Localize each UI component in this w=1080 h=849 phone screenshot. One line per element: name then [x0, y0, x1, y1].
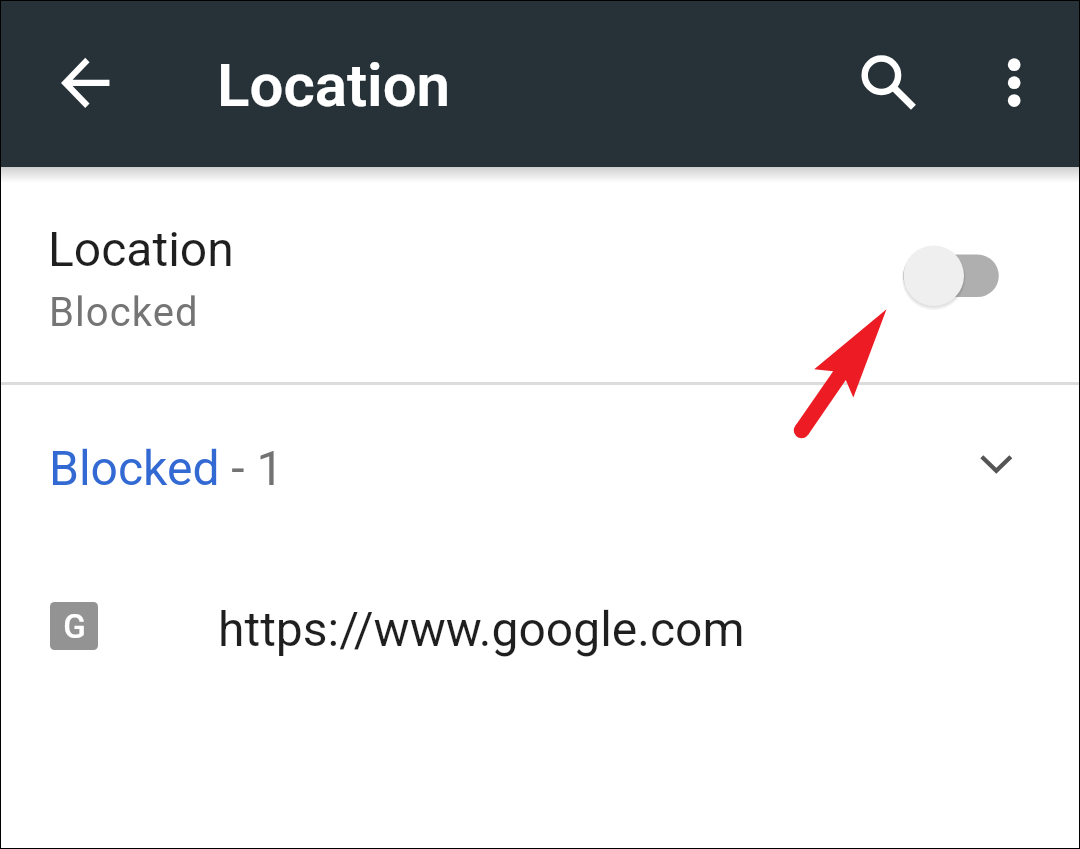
staticText: Location [48, 221, 234, 277]
staticText: https://www.google.com [218, 601, 745, 657]
button[interactable] [1, 177, 1079, 382]
button[interactable] [1, 384, 1079, 549]
button[interactable]: Search [835, 28, 931, 124]
staticText: Blocked - 1 [49, 440, 284, 496]
button[interactable] [1, 549, 1079, 669]
button[interactable]: Expand blocked list [957, 426, 1037, 506]
staticText: Location [217, 50, 451, 120]
button[interactable]: Location permission toggle [891, 236, 1011, 316]
staticText: Blocked [49, 289, 199, 336]
button[interactable]: More options [967, 35, 1063, 131]
button[interactable]: Navigate up [37, 35, 133, 131]
staticText: G [63, 607, 86, 646]
